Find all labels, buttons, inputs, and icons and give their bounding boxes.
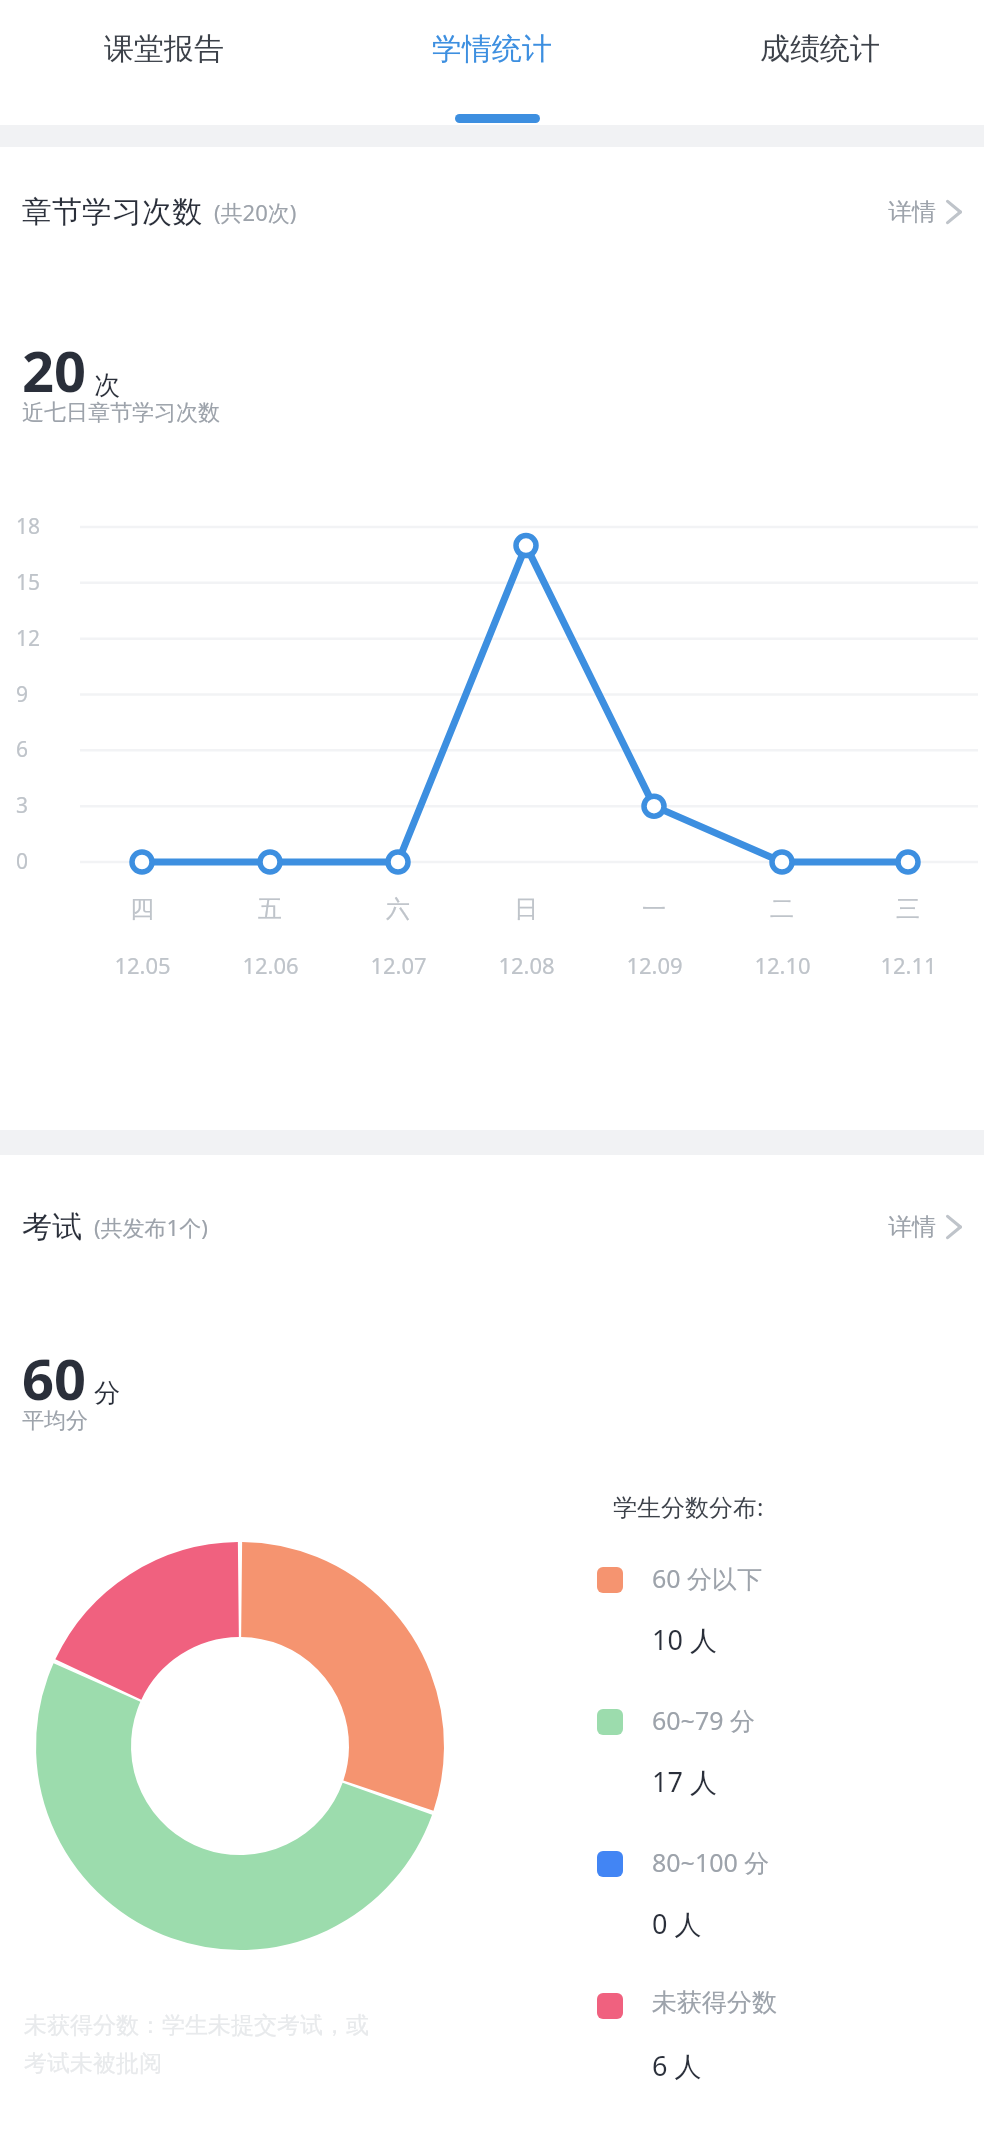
other: 详情	[946, 1213, 962, 1241]
button[interactable]: 未获得分数	[590, 1985, 970, 2105]
staticText: 17 人	[652, 1763, 717, 1800]
staticText: 五	[258, 894, 282, 924]
staticText: 详情	[888, 197, 936, 227]
staticText: 12.07	[370, 950, 427, 980]
staticText: 成绩统计	[760, 30, 880, 68]
staticText: 12.09	[626, 950, 683, 980]
staticText: 15	[16, 568, 64, 597]
staticText: 详情	[888, 1212, 936, 1242]
staticText: 6 人	[652, 2047, 702, 2084]
other: 详情	[946, 198, 962, 226]
staticText: 未获得分数	[652, 1987, 777, 2018]
staticText: 12	[16, 624, 64, 653]
staticText: 四	[130, 894, 154, 924]
staticText: 12.08	[498, 950, 555, 980]
staticText: 12.06	[242, 950, 299, 980]
staticText: 三	[896, 894, 920, 924]
staticText: 6	[16, 735, 64, 764]
staticText: 二	[770, 894, 794, 924]
button[interactable]: 学情统计	[328, 0, 656, 125]
staticText: 未获得分数：学生未提交考试，或 考试未被批阅	[24, 2011, 464, 2078]
staticText: 18	[16, 512, 64, 541]
staticText: (共发布1个)	[94, 1212, 208, 1242]
staticText: 考试	[22, 1208, 82, 1246]
staticText: 章节学习次数	[22, 193, 202, 231]
button[interactable]: 详情	[888, 189, 962, 235]
button[interactable]: 课堂报告	[0, 0, 328, 125]
button[interactable]: 60~79 分	[590, 1701, 970, 1821]
button[interactable]: 80~100 分	[590, 1843, 970, 1963]
staticText: 12.11	[880, 950, 937, 980]
staticText: 学情统计	[432, 30, 552, 68]
staticText: 近七日章节学习次数	[22, 399, 220, 427]
staticText: 12.10	[754, 950, 811, 980]
button[interactable]: 成绩统计	[656, 0, 984, 125]
staticText: 0	[16, 847, 64, 876]
staticText: 一	[642, 894, 666, 924]
staticText: 60~79 分	[652, 1703, 756, 1737]
staticText: 20	[22, 332, 87, 408]
staticText: 3	[16, 791, 64, 820]
staticText: 0 人	[652, 1905, 702, 1942]
staticText: 60 分以下	[652, 1561, 763, 1595]
staticText: 分	[94, 1377, 120, 1410]
button[interactable]: 60 分以下	[590, 1559, 970, 1679]
staticText: 六	[386, 894, 410, 924]
staticText: 日	[514, 894, 538, 924]
staticText: 学生分数分布:	[613, 1490, 764, 1523]
staticText: 80~100 分	[652, 1845, 770, 1879]
staticText: (共20次)	[214, 197, 297, 227]
staticText: 平均分	[22, 1407, 88, 1435]
staticText: 10 人	[652, 1621, 717, 1658]
staticText: 课堂报告	[104, 30, 224, 68]
staticText: 12.05	[114, 950, 171, 980]
staticText: 次	[94, 369, 120, 402]
staticText: 60	[22, 1340, 87, 1416]
button[interactable]: 详情	[888, 1204, 962, 1250]
staticText: 9	[16, 680, 64, 709]
